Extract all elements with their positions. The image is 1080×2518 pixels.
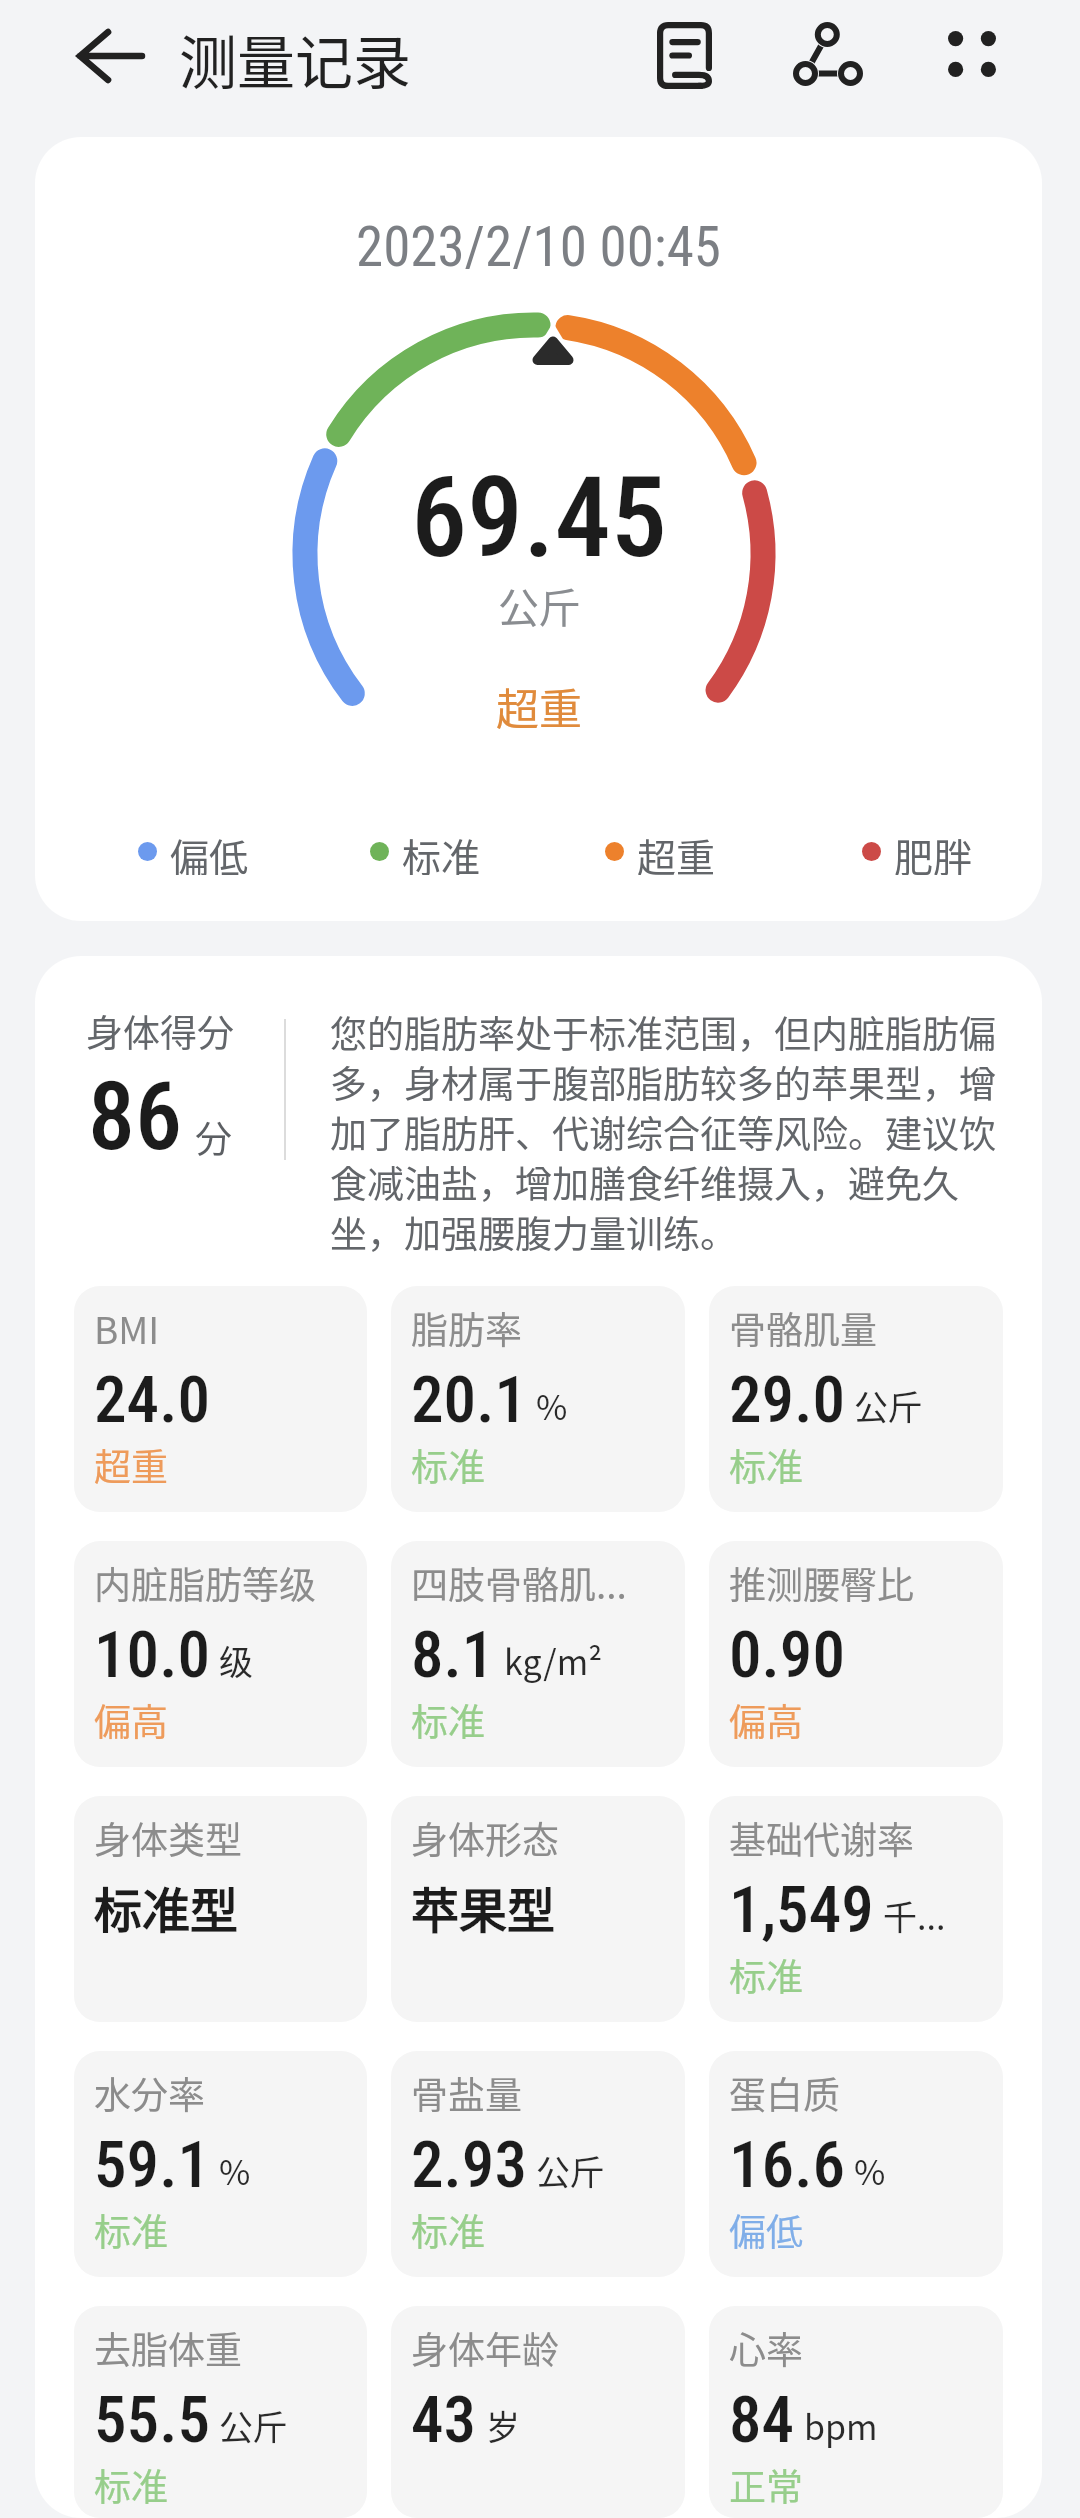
staticText: 2023/2/10 00:45 <box>356 215 721 279</box>
staticText: 脂肪率 <box>411 1301 522 1355</box>
staticText: 标准 <box>729 1438 803 1492</box>
staticText: 24.0 <box>94 1362 210 1438</box>
staticText: 59.1 <box>94 2127 210 2203</box>
staticText: 身体类型 <box>94 1811 242 1865</box>
staticText: 69.45 <box>411 452 667 583</box>
button[interactable]: Share <box>780 6 876 102</box>
staticText: 公斤 <box>536 2146 604 2195</box>
staticText: 偏低 <box>729 2203 803 2257</box>
staticText: 分 <box>195 1110 232 1164</box>
staticText: 您的脂肪率处于标准范围，但内脏脂肪偏多，身材属于腹部脂肪较多的苹果型，增加了脂肪… <box>330 1005 1002 1259</box>
button[interactable]: 骨骼肌量 <box>709 1286 1003 1512</box>
staticText: 蛋白质 <box>729 2066 840 2120</box>
staticText: 2.93 <box>411 2127 527 2203</box>
staticText: % <box>219 2146 251 2195</box>
button[interactable]: 身体年龄 <box>391 2306 685 2518</box>
staticText: 去脂体重 <box>94 2321 242 2375</box>
staticText: 标准 <box>94 2203 168 2257</box>
button[interactable]: 四肢骨骼肌... <box>391 1541 685 1767</box>
button[interactable]: 去脂体重 <box>74 2306 367 2518</box>
staticText: 16.6 <box>729 2127 845 2203</box>
staticText: 身体得分 <box>86 1004 234 1058</box>
staticText: 标准 <box>402 827 481 875</box>
staticText: 1,549 <box>729 1872 874 1948</box>
button[interactable]: 水分率 <box>74 2051 367 2277</box>
button[interactable]: 身体形态 <box>391 1796 685 2022</box>
staticText: 偏高 <box>729 1693 803 1747</box>
staticText: 内脏脂肪等级 <box>94 1556 316 1610</box>
staticText: 偏低 <box>170 827 249 875</box>
button[interactable]: 骨盐量 <box>391 2051 685 2277</box>
staticText: 超重 <box>94 1438 168 1492</box>
staticText: 公斤 <box>219 2401 287 2450</box>
staticText: 四肢骨骼肌... <box>411 1556 627 1610</box>
staticText: 骨骼肌量 <box>729 1301 877 1355</box>
staticText: 标准 <box>411 1438 485 1492</box>
staticText: 标准型 <box>94 1872 239 1942</box>
staticText: % <box>854 2146 886 2195</box>
staticText: 84 <box>729 2382 795 2458</box>
staticText: 骨盐量 <box>411 2066 522 2120</box>
staticText: 心率 <box>729 2321 803 2375</box>
staticText: 公斤 <box>854 1381 922 1430</box>
staticText: 超重 <box>637 827 716 875</box>
staticText: 标准 <box>411 1693 485 1747</box>
staticText: kg/m² <box>504 1636 603 1685</box>
button[interactable]: 推测腰臀比 <box>709 1541 1003 1767</box>
staticText: 8.1 <box>411 1617 495 1693</box>
button[interactable]: Back <box>62 8 158 104</box>
staticText: 超重 <box>496 675 582 737</box>
staticText: 标准 <box>94 2458 168 2512</box>
staticText: % <box>536 1381 568 1430</box>
staticText: 身体年龄 <box>411 2321 559 2375</box>
staticText: 岁 <box>486 2401 520 2450</box>
button[interactable]: 蛋白质 <box>709 2051 1003 2277</box>
button[interactable]: 身体类型 <box>74 1796 367 2022</box>
staticText: BMI <box>94 1301 160 1355</box>
staticText: 公斤 <box>498 575 580 634</box>
staticText: 千... <box>883 1891 946 1940</box>
staticText: 10.0 <box>94 1617 210 1693</box>
staticText: 水分率 <box>94 2066 205 2120</box>
staticText: 苹果型 <box>411 1872 556 1942</box>
staticText: 0.90 <box>729 1617 845 1693</box>
staticText: 86 <box>88 1062 183 1172</box>
staticText: 55.5 <box>94 2382 210 2458</box>
button[interactable]: BMI <box>74 1286 367 1512</box>
button[interactable]: Report <box>636 7 732 103</box>
staticText: 肥胖 <box>894 827 973 875</box>
staticText: 43 <box>411 2382 477 2458</box>
button[interactable]: 脂肪率 <box>391 1286 685 1512</box>
button[interactable]: 心率 <box>709 2306 1003 2518</box>
staticText: 正常 <box>729 2458 803 2512</box>
staticText: 推测腰臀比 <box>729 1556 914 1610</box>
staticText: bpm <box>804 2401 878 2450</box>
staticText: 标准 <box>411 2203 485 2257</box>
staticText: 标准 <box>729 1948 803 2002</box>
button[interactable]: More options <box>924 6 1020 102</box>
button[interactable]: 内脏脂肪等级 <box>74 1541 367 1767</box>
staticText: 29.0 <box>729 1362 845 1438</box>
staticText: 基础代谢率 <box>729 1811 914 1865</box>
staticText: 偏高 <box>94 1693 168 1747</box>
staticText: 身体形态 <box>411 1811 559 1865</box>
staticText: 20.1 <box>411 1362 527 1438</box>
staticText: 级 <box>219 1636 253 1685</box>
button[interactable]: 基础代谢率 <box>709 1796 1003 2022</box>
staticText: 测量记录 <box>179 17 412 101</box>
